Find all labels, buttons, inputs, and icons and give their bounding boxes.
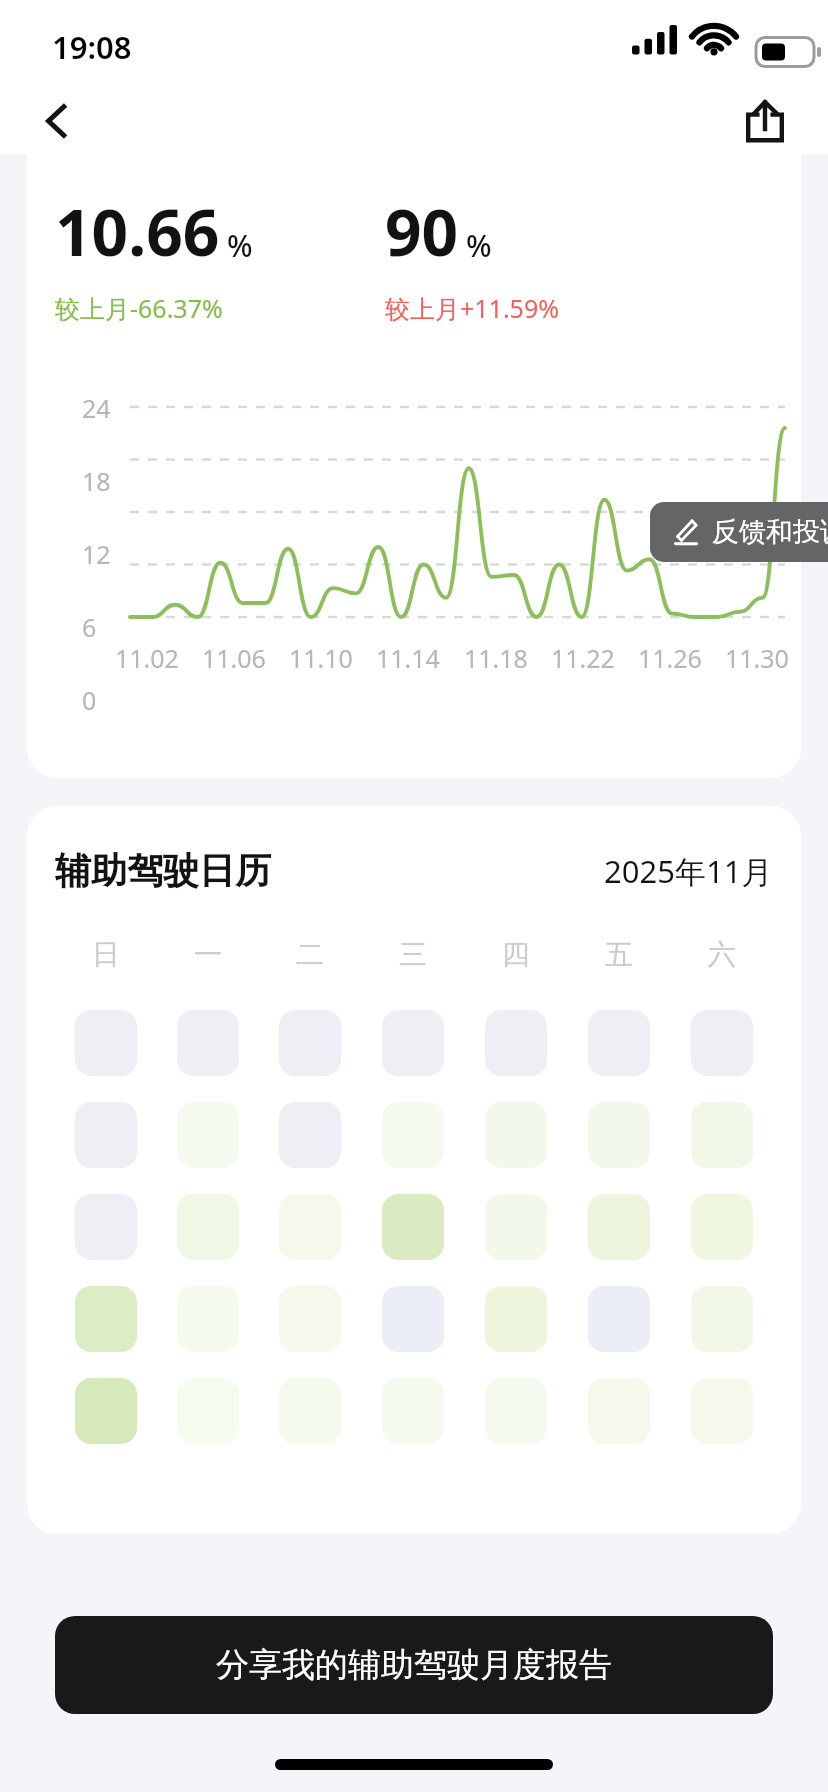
button[interactable] <box>177 1378 239 1444</box>
button[interactable] <box>75 1102 137 1168</box>
button[interactable]: 分享我的辅助驾驶月度报告 <box>55 1616 773 1714</box>
staticText: 18 <box>82 464 111 498</box>
staticText: % <box>466 225 492 266</box>
staticText: 10.66 <box>55 188 220 275</box>
staticText: 0 <box>82 683 97 717</box>
button[interactable] <box>177 1194 239 1260</box>
button[interactable] <box>588 1102 650 1168</box>
button[interactable] <box>691 1102 753 1168</box>
staticText: 19:08 <box>52 26 132 68</box>
button[interactable] <box>691 1010 753 1076</box>
button[interactable] <box>382 1102 444 1168</box>
button[interactable] <box>485 1010 547 1076</box>
button[interactable] <box>177 1102 239 1168</box>
button[interactable] <box>75 1378 137 1444</box>
button[interactable] <box>485 1378 547 1444</box>
staticText: 11.30 <box>725 641 789 675</box>
button[interactable]: 反馈和投诉 <box>650 502 828 562</box>
button[interactable] <box>485 1194 547 1260</box>
button[interactable]: Back <box>28 92 86 150</box>
staticText: 12 <box>82 537 111 571</box>
button[interactable] <box>691 1378 753 1444</box>
button[interactable] <box>279 1378 341 1444</box>
button[interactable] <box>485 1102 547 1168</box>
staticText: 11.02 <box>115 641 179 675</box>
staticText: 24 <box>82 391 111 425</box>
button[interactable] <box>177 1010 239 1076</box>
button[interactable] <box>588 1194 650 1260</box>
button[interactable] <box>691 1286 753 1352</box>
button[interactable] <box>75 1010 137 1076</box>
staticText: 反馈和投诉 <box>712 515 828 549</box>
button[interactable] <box>279 1194 341 1260</box>
staticText: 11.06 <box>202 641 266 675</box>
staticText: 二 <box>296 937 324 972</box>
staticText: 2025年11月 <box>604 850 773 892</box>
staticText: 三 <box>399 937 427 972</box>
button[interactable] <box>382 1378 444 1444</box>
staticText: 日 <box>92 937 120 972</box>
staticText: % <box>227 225 253 266</box>
button[interactable] <box>75 1286 137 1352</box>
staticText: 11.10 <box>289 641 353 675</box>
staticText: 四 <box>502 937 530 972</box>
button[interactable] <box>588 1378 650 1444</box>
staticText: 90 <box>385 188 459 275</box>
button[interactable] <box>177 1286 239 1352</box>
button[interactable] <box>75 1194 137 1260</box>
button[interactable] <box>588 1286 650 1352</box>
staticText: 6 <box>82 610 97 644</box>
staticText: 六 <box>708 937 736 972</box>
staticText: 较上月-66.37% <box>55 291 223 325</box>
button[interactable] <box>279 1010 341 1076</box>
staticText: 分享我的辅助驾驶月度报告 <box>216 1644 612 1686</box>
staticText: 较上月+11.59% <box>385 291 559 325</box>
staticText: 一 <box>194 937 222 972</box>
button[interactable] <box>382 1194 444 1260</box>
button[interactable] <box>382 1010 444 1076</box>
button[interactable] <box>279 1102 341 1168</box>
staticText: 五 <box>605 937 633 972</box>
button[interactable] <box>382 1286 444 1352</box>
button[interactable] <box>588 1010 650 1076</box>
button[interactable] <box>691 1194 753 1260</box>
staticText: 11.14 <box>376 641 440 675</box>
button[interactable]: Share <box>734 90 796 152</box>
button[interactable] <box>279 1286 341 1352</box>
staticText: 11.18 <box>464 641 528 675</box>
staticText: 11.26 <box>638 641 702 675</box>
staticText: 辅助驾驶日历 <box>55 848 271 893</box>
staticText: 11.22 <box>551 641 615 675</box>
button[interactable] <box>485 1286 547 1352</box>
